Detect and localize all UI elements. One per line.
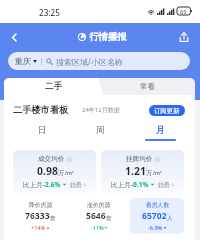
staticText: 二手 bbox=[45, 81, 62, 92]
staticText: 套 bbox=[106, 214, 112, 221]
staticText: 趋势 bbox=[70, 181, 82, 189]
staticText: 23:25 bbox=[39, 7, 60, 18]
button[interactable]: Share bbox=[175, 28, 193, 46]
staticText: -2.6% bbox=[43, 180, 61, 189]
staticText: 65702 bbox=[142, 210, 167, 222]
staticText: 订阅更新 bbox=[154, 107, 180, 115]
staticText: 二手楼市看板 bbox=[13, 104, 69, 116]
button[interactable]: Back bbox=[4, 27, 24, 47]
staticText: 万 bbox=[146, 169, 153, 177]
staticText: 套 bbox=[50, 214, 56, 221]
staticText: 搜索区域/小区名称 bbox=[56, 56, 123, 67]
staticText: 5646 bbox=[86, 210, 106, 222]
button[interactable]: 常看 bbox=[99, 78, 195, 95]
staticText: 1.21 bbox=[125, 164, 146, 178]
staticText: 万 bbox=[58, 169, 65, 177]
button[interactable]: 二手 bbox=[4, 78, 102, 95]
button[interactable]: 降价房源 bbox=[13, 198, 68, 234]
staticText: 常看 bbox=[140, 82, 155, 91]
staticText: 趋势 bbox=[158, 181, 170, 189]
staticText: 周 bbox=[96, 125, 105, 136]
staticText: /m² bbox=[65, 169, 74, 176]
staticText: 行情播报 bbox=[89, 31, 127, 43]
button[interactable]: 成交均价 bbox=[13, 150, 96, 193]
staticText: 比上月 bbox=[23, 181, 43, 189]
staticText: 看房人数 bbox=[146, 201, 170, 208]
staticText: +14% bbox=[31, 224, 46, 231]
staticText: 24年12月数据 bbox=[82, 106, 120, 114]
staticText: 涨价房源 bbox=[87, 201, 111, 208]
staticText: 65 bbox=[180, 8, 187, 15]
staticText: 降价房源 bbox=[29, 201, 53, 208]
button[interactable]: 订阅更新 bbox=[149, 105, 185, 116]
staticText: 76333 bbox=[25, 210, 50, 222]
staticText: 日 bbox=[38, 125, 47, 136]
button[interactable]: 挂牌均价 bbox=[101, 150, 184, 193]
staticText: 0.98 bbox=[37, 164, 58, 178]
button[interactable]: 日 bbox=[15, 125, 69, 141]
staticText: 挂牌均价 bbox=[126, 155, 153, 163]
staticText: /m² bbox=[153, 169, 162, 176]
button[interactable]: 看房人数 bbox=[130, 198, 184, 234]
staticText: 月 bbox=[156, 125, 165, 136]
staticText: 人 bbox=[167, 214, 173, 221]
button[interactable]: 月 bbox=[133, 125, 187, 141]
button[interactable]: 重庆 bbox=[8, 52, 190, 70]
staticText: 重庆 bbox=[15, 56, 31, 66]
button[interactable]: 周 bbox=[73, 125, 127, 141]
staticText: -11% bbox=[91, 224, 104, 231]
staticText: 成交均价 bbox=[38, 155, 65, 163]
staticText: -6.9% bbox=[148, 224, 163, 231]
staticText: 比上月 bbox=[111, 181, 131, 189]
button[interactable]: 涨价房源 bbox=[72, 198, 126, 234]
staticText: -0.1% bbox=[131, 180, 149, 189]
